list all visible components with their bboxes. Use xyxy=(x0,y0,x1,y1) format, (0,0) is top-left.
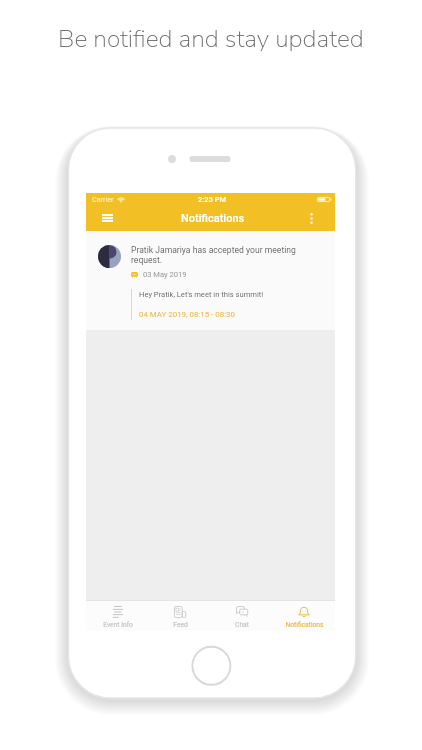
button[interactable]: Open navigation menu xyxy=(86,205,128,231)
staticText: Event Info xyxy=(103,621,133,629)
button[interactable]: Event Info xyxy=(86,601,149,631)
staticText: Carrier xyxy=(92,195,114,203)
button[interactable]: More options xyxy=(287,205,335,231)
staticText: 04 MAY 2019, 08:15 - 08:30 xyxy=(139,310,235,319)
button[interactable]: Chat xyxy=(211,601,273,631)
staticText: Pratik Jamariya has accepted your meetin… xyxy=(131,245,313,265)
button[interactable]: Feed xyxy=(149,601,211,631)
button[interactable]: Pratik Jamariya has accepted your meetin… xyxy=(86,231,335,330)
staticText: Feed xyxy=(173,621,188,629)
button[interactable]: Notifications xyxy=(273,601,335,631)
staticText: Chat xyxy=(235,621,249,629)
staticText: Hey Pratik, Let's meet in this summit! xyxy=(139,290,264,299)
staticText: 2:25 PM xyxy=(198,195,227,204)
staticText: Be notified and stay updated xyxy=(58,22,364,56)
staticText: Notifications xyxy=(181,212,245,225)
staticText: Notifications xyxy=(285,621,324,629)
staticText: 03 May 2019 xyxy=(143,270,187,279)
